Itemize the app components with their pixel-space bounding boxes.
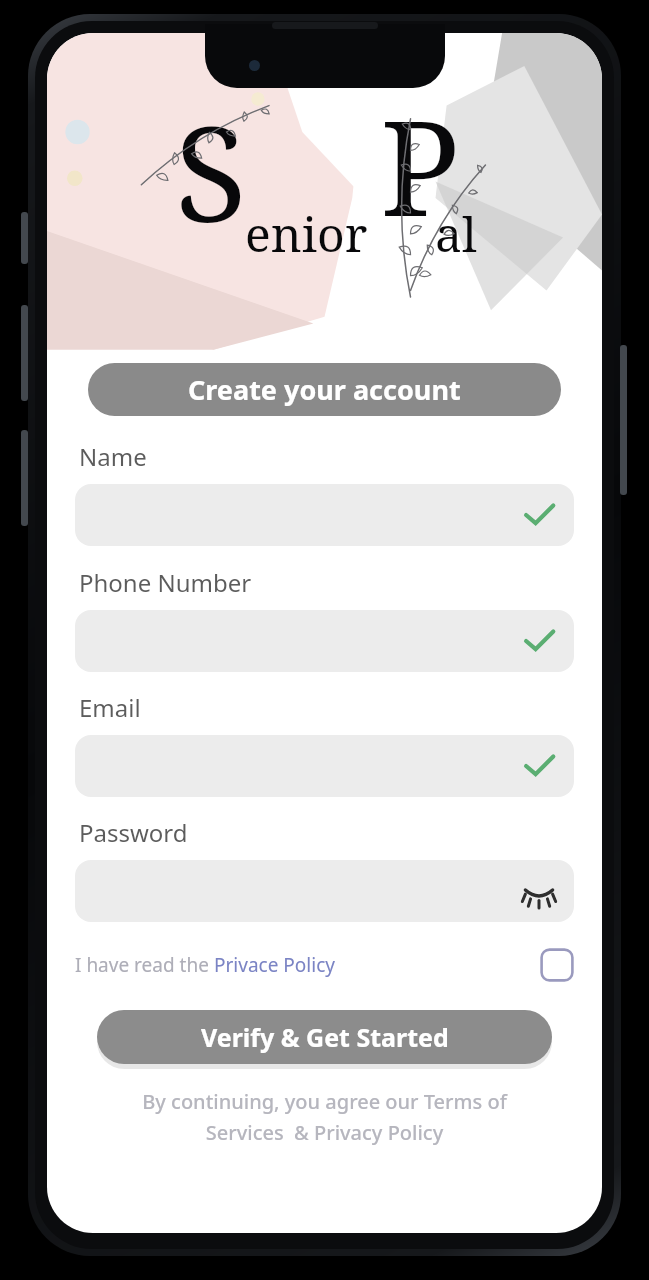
staticText: Name — [79, 440, 147, 473]
button[interactable]: Create your account — [88, 363, 561, 416]
staticText: al — [435, 201, 477, 266]
button[interactable]: Valid — [75, 484, 574, 546]
staticText: enior — [245, 201, 368, 266]
button[interactable]: Show password — [75, 860, 574, 922]
button[interactable]: Valid — [75, 735, 574, 797]
staticText: Email — [79, 691, 141, 724]
button[interactable]: Valid — [522, 749, 556, 783]
staticText: Password — [79, 816, 188, 849]
staticText: P — [380, 75, 460, 255]
button[interactable]: Accept privacy policy — [540, 948, 574, 982]
staticText: Phone Number — [79, 566, 252, 599]
staticText: I have read the — [75, 952, 214, 978]
staticText: Verify & Get Started — [201, 1020, 449, 1054]
button[interactable]: Valid — [522, 624, 556, 658]
staticText: Create your account — [188, 371, 461, 408]
staticText: Privace Policy — [214, 952, 335, 978]
staticText: By continuing, you agree our Terms of Se… — [67, 1088, 582, 1146]
button[interactable]: I have read the — [75, 948, 574, 982]
button[interactable]: Show password — [522, 874, 556, 908]
button[interactable]: Valid — [522, 498, 556, 532]
staticText: S — [175, 81, 247, 261]
button[interactable]: Valid — [75, 610, 574, 672]
button[interactable]: Verify & Get Started — [97, 1010, 552, 1064]
